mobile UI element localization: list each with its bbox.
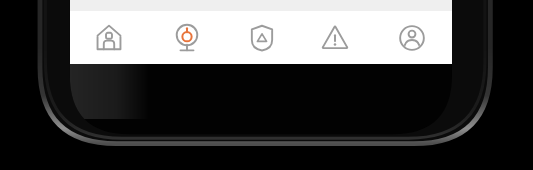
button[interactable]: Home [70,11,148,64]
button[interactable]: Cameras [148,11,225,64]
button[interactable]: Alerts [298,11,372,64]
button[interactable]: Account [372,11,452,64]
button[interactable]: Security [225,11,298,64]
